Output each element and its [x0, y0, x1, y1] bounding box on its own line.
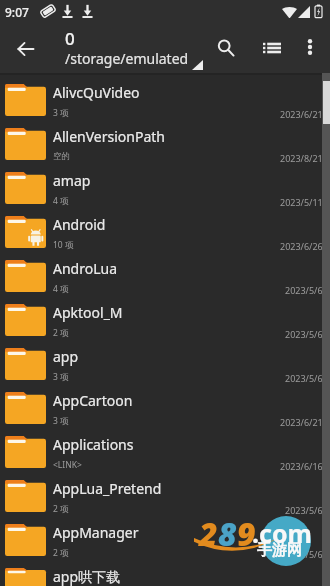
staticText: AllenVersionPath: [53, 127, 268, 146]
staticText: 2: [199, 512, 218, 556]
button[interactable]: AppLua_Pretend: [0, 474, 330, 518]
staticText: 2023/5/6: [285, 548, 323, 560]
staticText: Apktool_M: [53, 303, 268, 322]
staticText: AlivcQuVideo: [53, 83, 268, 102]
staticText: 2023/5/6: [285, 372, 323, 384]
button[interactable]: AllenVersionPath: [0, 122, 330, 166]
staticText: 3 项: [53, 371, 69, 383]
button[interactable]: app: [0, 342, 330, 386]
staticText: 2 项: [53, 547, 69, 559]
staticText: 2023/5/6: [285, 284, 323, 296]
button[interactable]: Back: [8, 31, 44, 67]
staticText: 9: [237, 512, 256, 556]
staticText: AppCartoon: [53, 391, 268, 410]
staticText: app: [53, 347, 268, 366]
button[interactable]: Applications: [0, 430, 330, 474]
button[interactable]: amap: [0, 166, 330, 210]
button[interactable]: Android: [0, 210, 330, 254]
staticText: 4 项: [53, 283, 69, 295]
button[interactable]: AlivcQuVideo: [0, 78, 330, 122]
staticText: Applications: [53, 435, 268, 454]
staticText: 2023/8/21: [280, 152, 323, 164]
button[interactable]: Apktool_M: [0, 298, 330, 342]
staticText: 0: [65, 27, 75, 50]
staticText: <LINK>: [53, 459, 82, 471]
staticText: 8: [218, 512, 237, 556]
staticText: AndroLua: [53, 259, 268, 278]
staticText: 4 项: [53, 195, 69, 207]
staticText: AppManager: [53, 523, 268, 542]
button[interactable]: Search: [209, 31, 242, 64]
staticText: 手游网: [257, 541, 302, 560]
staticText: 3 项: [53, 415, 69, 427]
staticText: 2023/5/11: [280, 196, 323, 208]
staticText: 2 项: [53, 503, 69, 515]
button[interactable]: AndroLua: [0, 254, 330, 298]
staticText: 2023/5/6: [285, 328, 323, 340]
staticText: 3 项: [53, 107, 69, 119]
staticText: .com: [252, 516, 312, 550]
staticText: Android: [53, 215, 268, 234]
staticText: 10 项: [53, 239, 74, 251]
staticText: 2023/6/21: [280, 108, 323, 120]
button[interactable]: View mode: [255, 31, 288, 64]
staticText: 9:07: [5, 4, 29, 20]
staticText: 2023/6/16: [280, 460, 323, 472]
staticText: amap: [53, 171, 268, 190]
staticText: 2023/5/6: [285, 504, 323, 516]
button[interactable]: app哄下载: [0, 562, 330, 586]
button[interactable]: AppManager: [0, 518, 330, 562]
button[interactable]: AppCartoon: [0, 386, 330, 430]
staticText: /storage/emulated: [65, 49, 189, 68]
staticText: 2 项: [53, 327, 69, 339]
staticText: 2023/6/26: [280, 240, 323, 252]
button[interactable]: More options: [294, 31, 325, 62]
staticText: 2023/6/21: [280, 416, 323, 428]
staticText: AppLua_Pretend: [53, 479, 268, 498]
staticText: app哄下载: [53, 567, 268, 586]
staticText: 空的: [53, 151, 70, 162]
